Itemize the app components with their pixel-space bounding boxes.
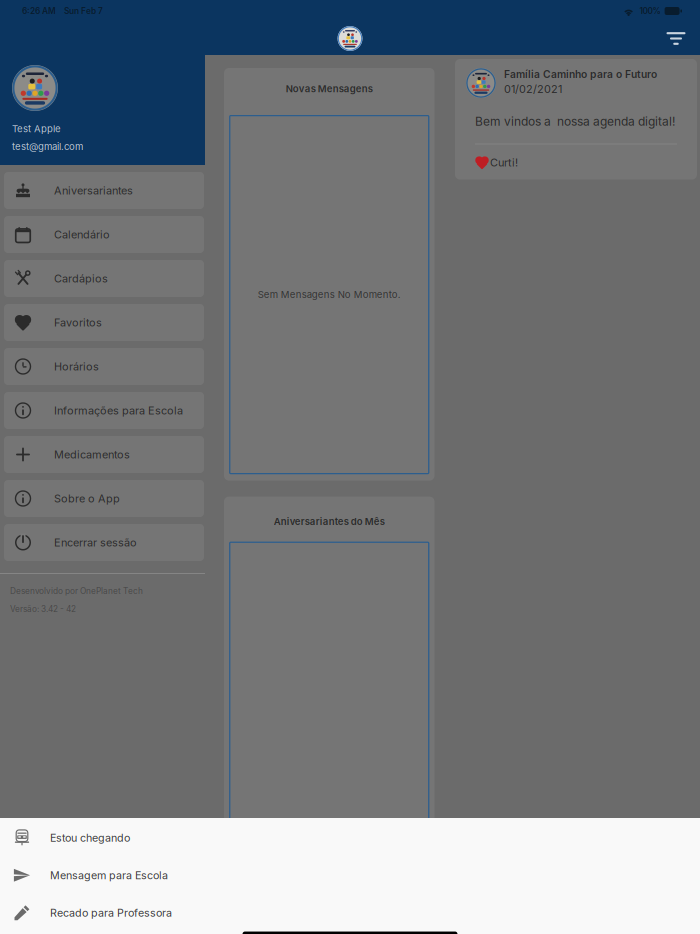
staticText: Sun Feb 7 (64, 6, 103, 16)
staticText: Família Caminho para o Futuro (504, 68, 657, 80)
staticText: 100% (640, 6, 661, 16)
button[interactable]: Sobre o App (1, 480, 204, 517)
staticText: Recado para Professora (50, 906, 172, 919)
staticText: Bem vindos a nossa agenda digital! (475, 114, 675, 128)
staticText: Curti! (490, 156, 518, 169)
staticText: Horários (54, 360, 99, 373)
staticText: Sobre o App (54, 492, 120, 505)
button[interactable]: Cardápios (1, 260, 204, 297)
staticText: Aniversariantes (54, 184, 133, 197)
staticText: Informações para Escola (54, 404, 183, 417)
staticText: Versão: 3.42 - 42 (10, 604, 76, 614)
staticText: Sem Mensagens No Momento. (258, 289, 401, 300)
button[interactable]: Calendário (1, 216, 204, 253)
staticText: Mensagem para Escola (50, 869, 168, 882)
button[interactable]: Estou chegando (0, 819, 700, 856)
button[interactable]: Favoritos (1, 304, 204, 341)
staticText: Medicamentos (54, 448, 130, 461)
staticText: Cardápios (54, 272, 108, 285)
staticText: Calendário (54, 228, 110, 241)
staticText: 01/02/2021 (504, 82, 562, 96)
staticText: Novas Mensagens (286, 83, 373, 95)
staticText: Encerrar sessão (54, 536, 137, 549)
staticText: Desenvolvido por OnePlanet Tech (10, 586, 143, 596)
button[interactable]: Mensagem para Escola (0, 856, 700, 894)
button[interactable]: Curti! (466, 155, 518, 169)
staticText: test@gmail.com (12, 141, 83, 152)
button[interactable]: Horários (1, 348, 204, 385)
staticText: 6:26 AM (22, 6, 56, 16)
button[interactable]: Aniversariantes (1, 172, 204, 209)
staticText: Aniversariantes do Mês (274, 516, 385, 527)
button[interactable]: Recado para Professora (0, 894, 700, 931)
button[interactable]: Encerrar sessão (1, 524, 204, 561)
staticText: Estou chegando (50, 831, 130, 844)
staticText: Favoritos (54, 316, 102, 329)
button[interactable]: Filtrar (659, 24, 693, 52)
button[interactable]: Informações para Escola (1, 392, 204, 429)
staticText: Test Apple (12, 123, 61, 135)
button[interactable]: Medicamentos (1, 436, 204, 473)
